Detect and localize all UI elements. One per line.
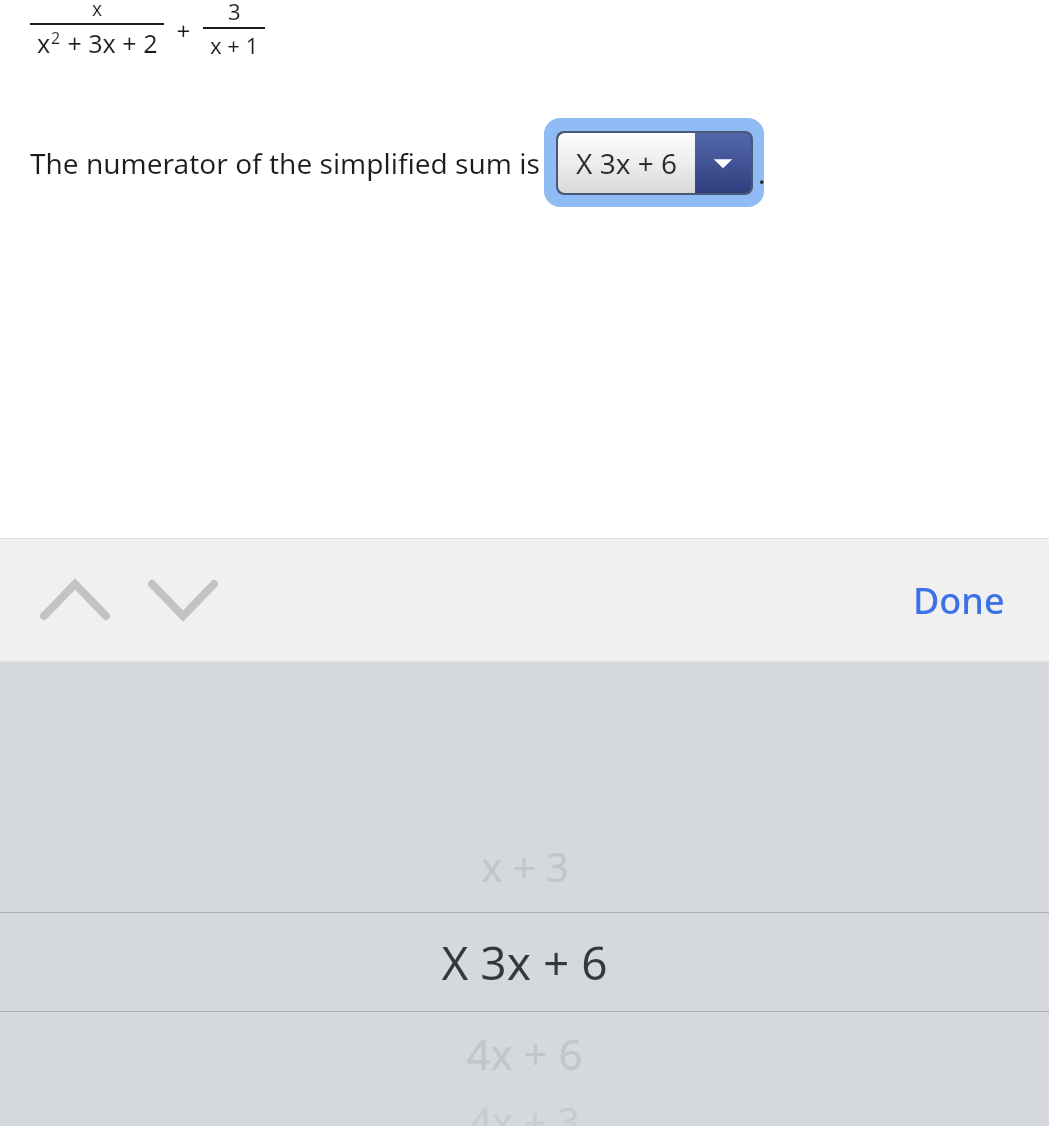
staticText: . [758, 154, 766, 192]
staticText: Done [913, 576, 1005, 625]
staticText: + 3x + 2 [61, 26, 158, 60]
staticText: X 3x + 6 [441, 931, 608, 994]
button[interactable]: Previous field [32, 557, 118, 643]
staticText: X 3x + 6 [576, 144, 678, 182]
button[interactable]: X 3x + 6 [0, 912, 1049, 1012]
button[interactable]: Next field [140, 557, 226, 643]
staticText: 4x + 3 [469, 1094, 580, 1126]
button[interactable]: Select answer: X 3x + 6 [544, 118, 764, 207]
staticText: x + 3 [481, 839, 569, 893]
staticText: x [37, 26, 51, 60]
staticText: The numerator of the simplified sum is [30, 144, 540, 182]
staticText: 4x + 6 [466, 1025, 583, 1082]
button[interactable]: Done [893, 562, 1025, 639]
staticText: 3 [228, 0, 241, 26]
staticText: + [164, 14, 203, 47]
staticText: 2 [51, 27, 61, 49]
staticText: x + 1 [210, 30, 259, 60]
staticText: x [92, 0, 103, 22]
